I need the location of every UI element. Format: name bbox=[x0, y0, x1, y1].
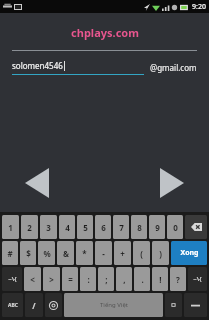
button[interactable]: ) bbox=[152, 241, 169, 265]
button[interactable]: 8 bbox=[131, 215, 147, 239]
button[interactable]: ~\{ bbox=[2, 267, 22, 291]
button[interactable]: ( bbox=[133, 241, 150, 265]
staticText: 1 bbox=[8, 222, 13, 233]
button[interactable]: ~\{ bbox=[188, 267, 207, 291]
staticText: ~\{ bbox=[193, 275, 202, 283]
staticText: : bbox=[87, 274, 90, 285]
button[interactable]: * bbox=[76, 241, 93, 265]
staticText: % bbox=[43, 248, 51, 259]
button[interactable]: $ bbox=[20, 241, 36, 265]
staticText: ; bbox=[105, 274, 108, 285]
button[interactable]: > bbox=[43, 267, 60, 291]
button[interactable]: Next bbox=[157, 166, 187, 200]
staticText: = bbox=[68, 274, 73, 285]
button[interactable]: - bbox=[95, 241, 112, 265]
button[interactable]: Xong bbox=[171, 241, 207, 265]
button[interactable]: ; bbox=[98, 267, 114, 291]
staticText: , bbox=[123, 274, 126, 285]
button[interactable]: solomen4546 bbox=[12, 60, 144, 75]
button[interactable]: At sign bbox=[45, 293, 62, 317]
button[interactable]: Previous bbox=[22, 166, 52, 200]
staticText: 5 bbox=[83, 222, 88, 233]
button[interactable]: / bbox=[25, 293, 43, 317]
staticText: chplays.com bbox=[71, 25, 139, 40]
staticText: 7 bbox=[119, 222, 124, 233]
staticText: + bbox=[120, 248, 125, 259]
button[interactable]: 5 bbox=[77, 215, 93, 239]
staticText: & bbox=[63, 248, 69, 259]
staticText: @gmail.com bbox=[150, 62, 197, 73]
staticText: Tiếng Việt bbox=[100, 301, 128, 309]
button[interactable]: 6 bbox=[95, 215, 111, 239]
button[interactable]: ? bbox=[170, 267, 186, 291]
button[interactable]: 4 bbox=[59, 215, 75, 239]
staticText: 4 bbox=[65, 222, 70, 233]
staticText: ! bbox=[159, 274, 162, 285]
button[interactable]: , bbox=[116, 267, 132, 291]
staticText: . bbox=[141, 274, 144, 285]
button[interactable]: 7 bbox=[113, 215, 129, 239]
staticText: solomen4546 bbox=[12, 60, 63, 71]
button[interactable]: Backspace bbox=[185, 215, 207, 239]
button[interactable]: + bbox=[114, 241, 131, 265]
staticText: ( bbox=[140, 248, 143, 259]
button[interactable]: 1 bbox=[2, 215, 19, 239]
button[interactable]: 0 bbox=[167, 215, 183, 239]
button[interactable]: ABC bbox=[2, 293, 23, 317]
staticText: - bbox=[102, 248, 105, 259]
button[interactable]: & bbox=[57, 241, 74, 265]
button[interactable]: % bbox=[38, 241, 55, 265]
button[interactable]: Enter bbox=[184, 293, 207, 317]
button[interactable]: Period bbox=[165, 293, 182, 317]
button[interactable]: # bbox=[2, 241, 18, 265]
button[interactable]: = bbox=[62, 267, 78, 291]
staticText: $ bbox=[26, 248, 31, 259]
button[interactable]: . bbox=[134, 267, 150, 291]
staticText: 9 bbox=[155, 222, 160, 233]
button[interactable]: < bbox=[24, 267, 41, 291]
staticText: * bbox=[82, 248, 87, 259]
staticText: 6 bbox=[101, 222, 106, 233]
staticText: 3 bbox=[46, 222, 51, 233]
button[interactable]: 3 bbox=[40, 215, 57, 239]
button[interactable]: Tiếng Việt bbox=[64, 293, 163, 317]
staticText: ABC bbox=[8, 302, 18, 309]
staticText: < bbox=[30, 274, 35, 285]
button[interactable]: : bbox=[80, 267, 96, 291]
staticText: 9:20 bbox=[192, 2, 206, 12]
staticText: Xong bbox=[180, 248, 199, 258]
staticText: ? bbox=[176, 274, 180, 285]
staticText: 0 bbox=[173, 222, 178, 233]
staticText: ) bbox=[159, 248, 162, 259]
button[interactable]: ! bbox=[152, 267, 168, 291]
staticText: # bbox=[7, 248, 13, 259]
staticText: > bbox=[49, 274, 54, 285]
staticText: / bbox=[32, 300, 36, 311]
staticText: ~\{ bbox=[8, 275, 17, 283]
staticText: 2 bbox=[27, 222, 32, 233]
staticText: 8 bbox=[137, 222, 142, 233]
button[interactable]: 9 bbox=[149, 215, 165, 239]
button[interactable]: 2 bbox=[21, 215, 38, 239]
